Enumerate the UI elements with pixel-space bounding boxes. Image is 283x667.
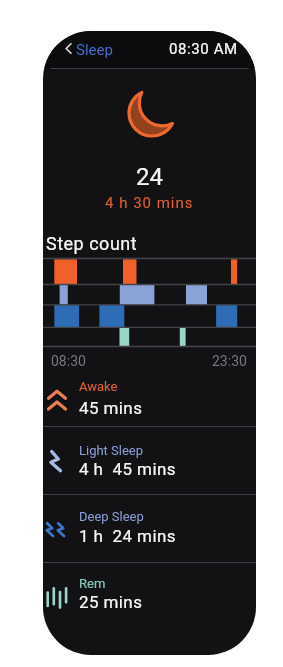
staticText: 1 h 24 mins — [79, 526, 176, 546]
staticText: 08:30 AM — [169, 40, 238, 58]
staticText: 45 mins — [79, 398, 143, 418]
staticText: 23:30 — [212, 353, 247, 369]
staticText: 4 h 30 mins — [105, 194, 194, 212]
button[interactable]: Rem — [43, 572, 256, 632]
button[interactable]: Light Sleep — [43, 438, 256, 494]
staticText: 08:30 — [51, 353, 86, 369]
staticText: 24 — [136, 163, 163, 191]
staticText: 25 mins — [79, 592, 143, 612]
staticText: Awake — [79, 379, 118, 394]
staticText: Sleep — [76, 41, 113, 59]
button[interactable]: Awake — [43, 375, 256, 426]
button[interactable]: Deep Sleep — [43, 505, 256, 562]
staticText: Rem — [79, 576, 106, 591]
staticText: 4 h 45 mins — [79, 459, 176, 479]
staticText: Light Sleep — [79, 443, 144, 458]
button[interactable]: Sleep — [61, 36, 127, 60]
staticText: Step count — [46, 233, 138, 254]
staticText: Deep Sleep — [79, 509, 144, 524]
